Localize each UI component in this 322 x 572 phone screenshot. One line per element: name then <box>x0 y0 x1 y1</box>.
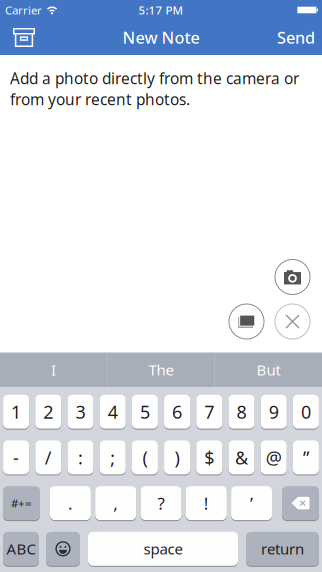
button[interactable]: space <box>88 532 238 566</box>
staticText: space <box>143 539 182 559</box>
button[interactable]: / <box>35 440 61 474</box>
button[interactable]: Take Photo <box>275 259 310 294</box>
button[interactable]: 7 <box>196 395 222 429</box>
button[interactable]: The <box>107 352 214 387</box>
staticText: 6 <box>172 400 182 424</box>
button[interactable]: 0 <box>293 395 319 429</box>
staticText: Add a photo directly from the camera or <box>10 68 299 88</box>
button[interactable]: ; <box>100 440 126 474</box>
button[interactable]: return <box>246 532 319 566</box>
staticText: Send <box>277 27 315 48</box>
staticText: But <box>256 360 280 380</box>
staticText: - <box>13 445 19 469</box>
button[interactable]: ? <box>140 486 181 520</box>
button[interactable]: 3 <box>67 395 93 429</box>
staticText: 3 <box>75 400 85 424</box>
button[interactable]: . <box>50 486 91 520</box>
button[interactable]: 2 <box>35 395 61 429</box>
staticText: ABC <box>6 539 35 559</box>
button[interactable]: & <box>228 440 254 474</box>
staticText: 2 <box>43 400 53 424</box>
button[interactable]: Emoji <box>46 532 80 566</box>
button[interactable]: ABC <box>3 532 39 566</box>
staticText: / <box>45 445 52 469</box>
button[interactable]: ( <box>132 440 158 474</box>
button[interactable]: ” <box>293 440 319 474</box>
staticText: ( <box>142 445 147 469</box>
staticText: ’ <box>250 492 253 514</box>
button[interactable]: Close <box>275 304 310 339</box>
button[interactable]: ! <box>186 486 227 520</box>
staticText: : <box>78 445 83 469</box>
button[interactable]: Archive <box>0 20 43 55</box>
button[interactable]: Delete <box>282 486 319 520</box>
button[interactable]: - <box>3 440 29 474</box>
button[interactable]: ) <box>164 440 190 474</box>
staticText: ! <box>204 492 209 514</box>
staticText: The <box>148 360 173 380</box>
staticText: , <box>113 492 118 514</box>
staticText: @ <box>266 445 282 469</box>
staticText: ) <box>175 445 180 469</box>
staticText: ; <box>110 445 115 469</box>
button[interactable]: $ <box>196 440 222 474</box>
staticText: 7 <box>204 400 214 424</box>
button[interactable]: : <box>67 440 93 474</box>
staticText: & <box>235 445 248 469</box>
staticText: 4 <box>108 400 118 424</box>
staticText: ? <box>157 492 164 514</box>
staticText: 0 <box>301 400 311 424</box>
button[interactable]: Send <box>277 20 322 55</box>
button[interactable]: Photo Library <box>229 304 264 339</box>
staticText: Carrier <box>5 2 42 18</box>
staticText: . <box>68 492 73 514</box>
staticText: ” <box>303 445 309 469</box>
staticText: 8 <box>236 400 246 424</box>
button[interactable]: 4 <box>100 395 126 429</box>
button[interactable]: 6 <box>164 395 190 429</box>
button[interactable]: 8 <box>228 395 254 429</box>
staticText: I <box>51 360 56 380</box>
button[interactable]: 1 <box>3 395 29 429</box>
staticText: $ <box>204 445 214 469</box>
button[interactable]: @ <box>261 440 287 474</box>
button[interactable]: ’ <box>231 486 272 520</box>
staticText: #+= <box>11 495 32 511</box>
staticText: 9 <box>269 400 279 424</box>
button[interactable]: 9 <box>261 395 287 429</box>
staticText: 5:17 PM <box>138 2 183 18</box>
staticText: 5 <box>140 400 150 424</box>
staticText: 1 <box>11 400 21 424</box>
staticText: return <box>261 539 304 559</box>
button[interactable]: 5 <box>132 395 158 429</box>
button[interactable]: , <box>95 486 136 520</box>
staticText: New Note <box>122 27 199 48</box>
button[interactable]: #+= <box>3 486 40 520</box>
button[interactable]: But <box>215 352 322 387</box>
button[interactable]: I <box>0 352 107 387</box>
staticText: from your recent photos. <box>10 89 190 109</box>
